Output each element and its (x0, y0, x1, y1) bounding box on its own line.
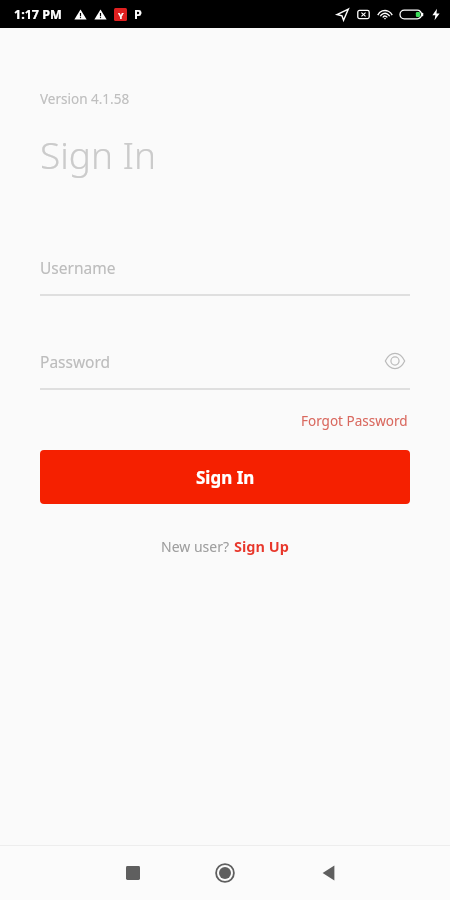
button[interactable]: Show password (380, 346, 410, 376)
staticText: Y (118, 9, 124, 21)
button[interactable]: Home (206, 854, 244, 892)
button[interactable]: Forgot Password (299, 409, 410, 433)
staticText: Version 4.1.58 (40, 90, 130, 108)
staticText: Sign In (196, 466, 255, 489)
staticText: Sign Up (234, 536, 289, 556)
button[interactable]: Sign In (40, 450, 410, 504)
staticText: Sign In (40, 129, 157, 179)
staticText: Password (40, 351, 111, 372)
staticText: New user? (161, 537, 233, 556)
staticText: 1:17 PM (14, 6, 62, 23)
button[interactable]: Recent apps (115, 855, 151, 891)
staticText: Forgot Password (301, 412, 408, 430)
button[interactable]: Sign Up (233, 534, 290, 558)
button[interactable]: Back (310, 855, 346, 891)
staticText: P (134, 6, 142, 23)
staticText: Username (40, 257, 116, 278)
